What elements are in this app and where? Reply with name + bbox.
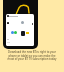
staticText: Download the new BT.tv right to your pho… (5, 50, 59, 60)
other: Logo (16, 4, 30, 14)
